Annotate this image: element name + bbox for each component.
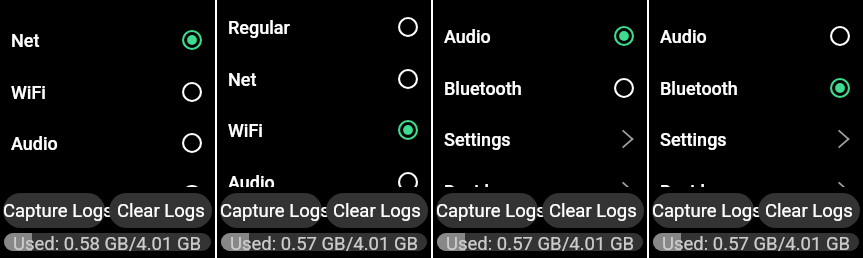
staticText: Capture Logs (3, 200, 105, 222)
button[interactable]: Clear Logs (326, 193, 428, 228)
staticText: WiFi (11, 82, 46, 103)
staticText: Capture Logs (436, 200, 538, 222)
button[interactable]: Bluetooth (649, 62, 863, 114)
button[interactable]: Net (217, 53, 431, 105)
button[interactable]: Audio (433, 10, 647, 62)
staticText: Audio (228, 172, 275, 187)
staticText: Used: 0.57 GB/4.01 GB (446, 233, 635, 251)
staticText: Net (11, 30, 40, 51)
staticText: Clear Logs (333, 200, 421, 222)
button[interactable]: Bluetooth (433, 62, 647, 114)
button[interactable]: Capture Logs (220, 193, 322, 228)
button[interactable]: Settings (433, 113, 647, 165)
staticText: WiFi (228, 120, 263, 141)
button[interactable]: Clear Logs (542, 193, 644, 228)
button[interactable]: Net (0, 14, 215, 66)
staticText: Audio (660, 26, 707, 47)
staticText: Regular (228, 17, 290, 38)
staticText: Settings (660, 129, 727, 150)
button[interactable]: Settings (649, 113, 863, 165)
button[interactable]: Clear Logs (109, 193, 212, 228)
button[interactable]: Capture Logs (436, 193, 538, 228)
staticText: Bluetooth (660, 78, 738, 99)
staticText: Devide (660, 181, 715, 187)
staticText: Settings (444, 129, 511, 150)
staticText: Used: 0.57 GB/4.01 GB (230, 233, 419, 251)
button[interactable]: Audio (649, 10, 863, 62)
staticText: Used: 0.58 GB/4.01 GB (13, 233, 202, 251)
staticText: Clear Logs (549, 200, 637, 222)
button[interactable]: Bluetooth (0, 169, 215, 187)
button[interactable]: Audio (217, 156, 431, 187)
button[interactable]: Devide (433, 165, 647, 187)
button[interactable]: WiFi (0, 66, 215, 118)
staticText: Clear Logs (765, 200, 853, 222)
button[interactable]: Capture Logs (652, 193, 754, 228)
button[interactable]: WiFi (217, 104, 431, 156)
staticText: Audio (11, 133, 58, 154)
staticText: Used: 0.57 GB/4.01 GB (662, 233, 851, 251)
staticText: Net (228, 69, 257, 90)
button[interactable]: Capture Logs (3, 193, 105, 228)
button[interactable]: Devide (649, 165, 863, 187)
staticText: Clear Logs (117, 200, 205, 222)
button[interactable]: Regular (217, 1, 431, 53)
button[interactable]: Clear Logs (758, 193, 860, 228)
staticText: Bluetooth (444, 78, 522, 99)
staticText: Capture Logs (652, 200, 754, 222)
button[interactable]: Audio (0, 117, 215, 169)
staticText: Devide (444, 181, 499, 187)
staticText: Audio (444, 26, 491, 47)
staticText: Capture Logs (220, 200, 322, 222)
